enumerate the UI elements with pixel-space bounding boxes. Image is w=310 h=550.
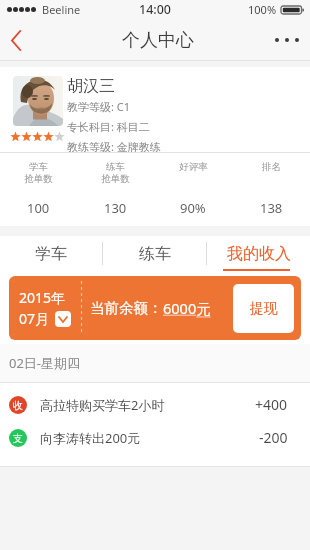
button[interactable]: More options <box>264 19 310 61</box>
staticText: 个人中心 <box>122 29 194 52</box>
staticText: 138 <box>260 199 283 217</box>
staticText: 130 <box>104 199 127 217</box>
staticText: 14:00 <box>139 1 172 18</box>
staticText: 2015年 <box>19 288 66 307</box>
staticText: 02日-星期四 <box>9 354 81 372</box>
button[interactable]: 提现 <box>233 284 294 333</box>
staticText: 100% <box>248 2 277 17</box>
staticText: 6000元 <box>163 298 211 318</box>
button[interactable]: 2015年 <box>19 288 71 328</box>
staticText: 练车 <box>139 244 171 264</box>
staticText: 排名 <box>262 161 281 173</box>
staticText: 提现 <box>250 300 278 318</box>
staticText: 90% <box>180 199 206 217</box>
staticText: 向李涛转出200元 <box>40 429 141 447</box>
staticText: Beeline <box>42 2 81 17</box>
staticText: 学车 <box>35 244 67 264</box>
button[interactable]: 我的收入 <box>207 236 310 271</box>
button[interactable]: 支 <box>0 421 310 454</box>
button[interactable]: Back <box>0 19 31 61</box>
staticText: 练车 抢单数 <box>101 161 130 185</box>
staticText: 我的收入 <box>227 244 291 264</box>
staticText: 支 <box>13 432 23 445</box>
staticText: 教学等级: C1 <box>67 99 131 114</box>
button[interactable]: 练车 <box>103 236 206 271</box>
staticText: 好评率 <box>179 161 208 173</box>
button[interactable]: 收 <box>0 388 310 421</box>
staticText: 07月 <box>19 309 50 328</box>
staticText: +400 <box>255 395 288 414</box>
staticText: -200 <box>259 428 288 447</box>
staticText: 胡汉三 <box>67 76 115 96</box>
staticText: 收 <box>13 399 23 412</box>
button[interactable]: 学车 <box>0 236 102 271</box>
staticText: 专长科目: 科目二 <box>67 119 150 134</box>
staticText: 高拉特购买学车2小时 <box>40 396 165 414</box>
staticText: 教练等级: 金牌教练 <box>67 139 161 152</box>
staticText: 当前余额： <box>90 299 163 317</box>
staticText: 学车 抢单数 <box>24 161 53 185</box>
staticText: 100 <box>27 199 50 217</box>
